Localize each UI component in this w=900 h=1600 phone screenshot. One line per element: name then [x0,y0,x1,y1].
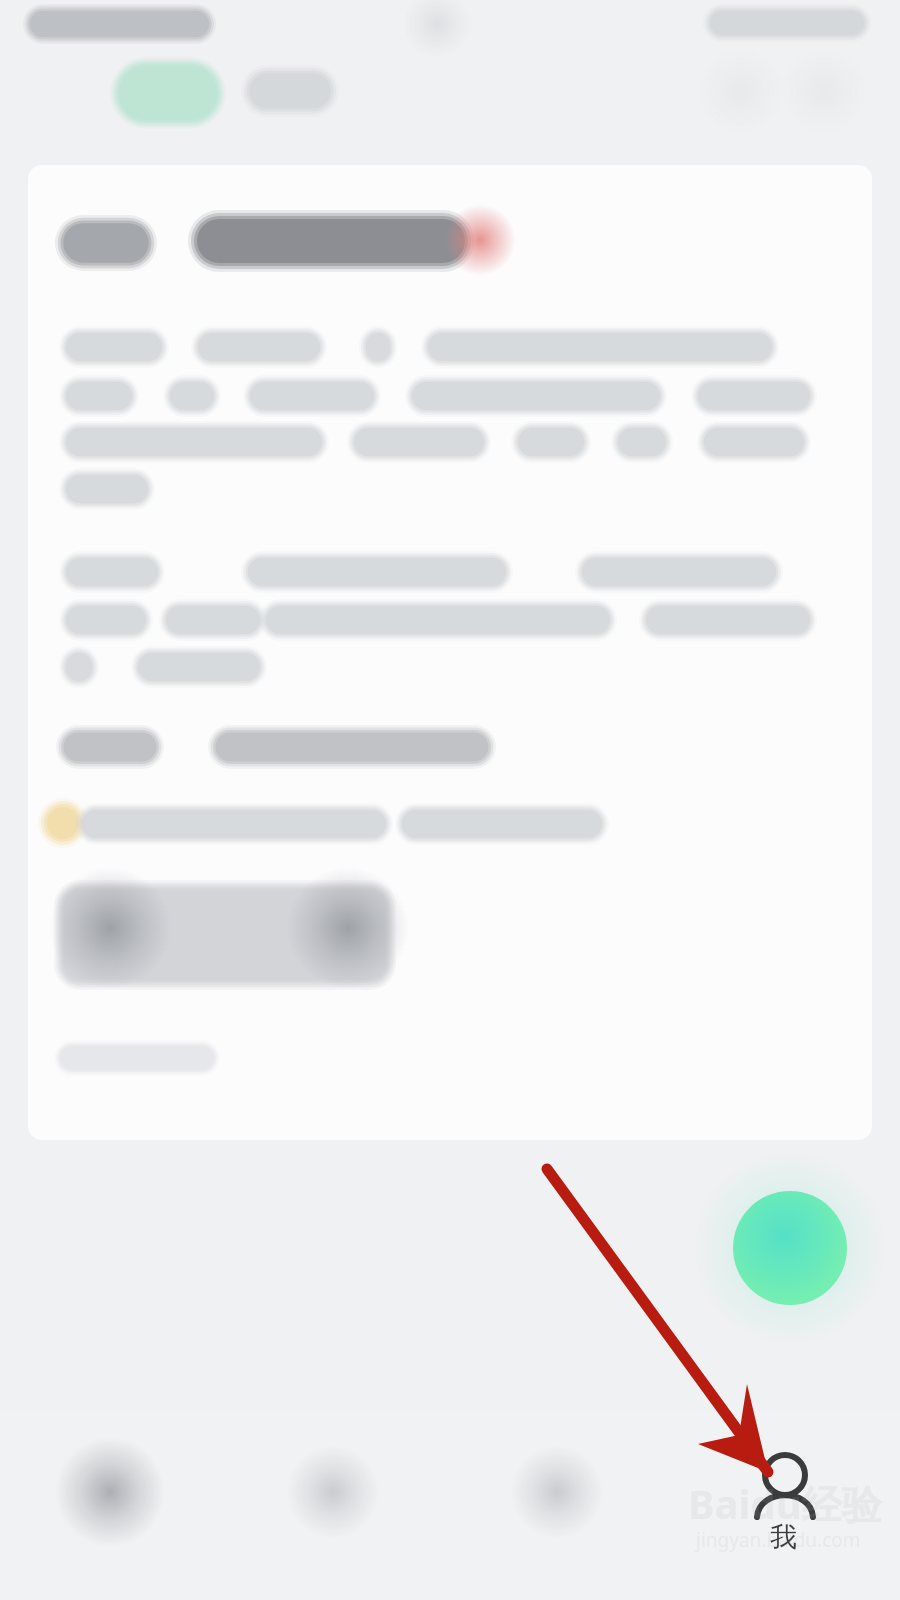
staticText: jingyan.baidu.com [696,1527,861,1553]
button[interactable]: Add [733,1191,847,1305]
button[interactable]: Home [0,1412,225,1600]
staticText: 我 [770,1520,797,1554]
button[interactable]: Messages [446,1412,671,1600]
button[interactable]: Tab [240,68,340,118]
staticText: Baidu经验 [688,1476,882,1531]
button[interactable]: Me [669,1412,894,1600]
button[interactable]: Discover [223,1412,448,1600]
button[interactable]: Selected tab [121,68,215,118]
button[interactable]: Article card [28,165,872,1140]
